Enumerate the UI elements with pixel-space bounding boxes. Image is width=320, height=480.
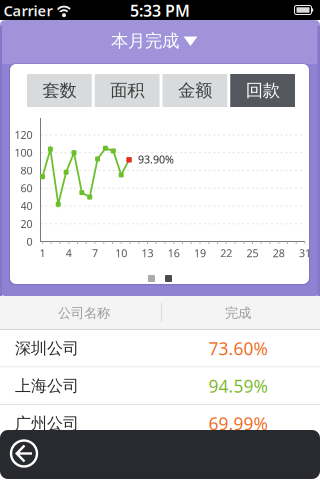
button[interactable]: 广州公司 [0, 405, 320, 442]
staticText: 69.99% [208, 412, 267, 435]
button[interactable]: 金额 [162, 74, 227, 107]
staticText: 面积 [110, 80, 144, 101]
staticText: 93.90% [138, 152, 174, 166]
staticText: 4 [66, 246, 72, 260]
staticText: 120 [14, 128, 32, 142]
button[interactable]: 回款 [230, 74, 295, 107]
staticText: 73.60% [208, 337, 267, 360]
staticText: 金额 [178, 80, 212, 101]
staticText: 40 [20, 199, 32, 213]
staticText: 0 [26, 234, 32, 249]
staticText: 19 [194, 246, 206, 260]
staticText: 5:33 PM [130, 0, 190, 21]
staticText: 深圳公司 [15, 339, 79, 358]
staticText: 广州公司 [15, 414, 79, 433]
staticText: 31 [299, 246, 311, 260]
staticText: 25 [246, 246, 258, 260]
staticText: 回款 [246, 80, 280, 101]
staticText: 28 [273, 246, 285, 260]
staticText: 22 [220, 246, 232, 260]
button[interactable]: 上海公司 [0, 367, 320, 405]
button[interactable]: 面积 [95, 74, 160, 107]
staticText: 套数 [42, 80, 76, 101]
staticText: 13 [141, 246, 153, 260]
staticText: 20 [20, 217, 32, 231]
button[interactable]: Back [7, 436, 41, 470]
staticText: 本月完成 [111, 30, 179, 52]
staticText: 1 [39, 246, 45, 260]
staticText: 公司名称 [58, 305, 110, 321]
staticText: 80 [20, 163, 32, 178]
button[interactable]: 套数 [27, 74, 92, 107]
staticText: 10 [115, 246, 127, 260]
staticText: 60 [20, 181, 32, 195]
staticText: 16 [168, 246, 180, 260]
staticText: 100 [14, 146, 32, 160]
button[interactable]: 本月完成 [102, 26, 212, 56]
staticText: 94.59% [208, 374, 267, 397]
staticText: 完成 [225, 305, 251, 321]
staticText: 7 [92, 246, 98, 260]
button[interactable]: 深圳公司 [0, 330, 320, 367]
staticText: 上海公司 [15, 376, 79, 396]
staticText: Carrier [3, 1, 52, 20]
